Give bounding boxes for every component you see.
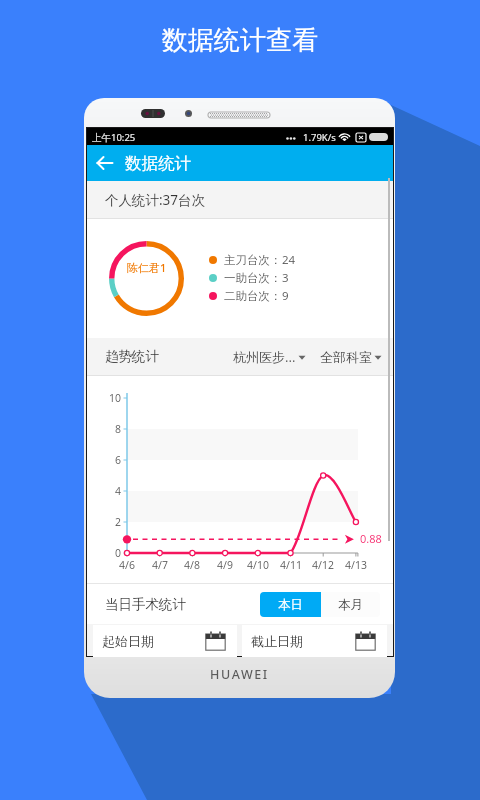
button[interactable]: Back [87, 145, 123, 181]
other: Pick date [355, 631, 376, 651]
staticText: HUAWEI [210, 666, 269, 683]
staticText: 4 [115, 484, 122, 498]
staticText: 本日 [278, 597, 303, 613]
staticText: 4/12 [312, 558, 334, 572]
staticText: 0.88 [360, 531, 382, 546]
button[interactable]: 全部科室 [320, 349, 382, 365]
other: Pick date [205, 631, 226, 651]
staticText: 4/9 [217, 558, 233, 572]
button[interactable]: 起始日期 [93, 625, 237, 657]
button[interactable]: 杭州医步... [233, 348, 306, 366]
staticText: 4/8 [184, 558, 200, 572]
staticText: 4/7 [152, 558, 168, 572]
staticText: 趋势统计 [105, 348, 159, 365]
staticText: 起始日期 [102, 633, 154, 649]
staticText: 一助台次： [224, 271, 282, 285]
staticText: 2 [115, 515, 122, 529]
staticText: 4/6 [119, 558, 135, 572]
staticText: 数据统计查看 [162, 24, 318, 57]
staticText: 个人统计:37台次 [105, 191, 206, 209]
staticText: 24 [282, 252, 296, 268]
staticText: 4/11 [280, 558, 302, 572]
button[interactable]: 本月 [321, 592, 380, 617]
staticText: 当日手术统计 [105, 596, 186, 613]
staticText: 6 [115, 453, 122, 467]
staticText: 主刀台次： [224, 253, 282, 267]
staticText: 杭州医步... [233, 348, 296, 366]
staticText: 0 [115, 546, 122, 560]
staticText: 上午10:25 [92, 131, 136, 144]
button[interactable]: 本日 [260, 592, 321, 617]
staticText: 4/13 [345, 558, 367, 572]
staticText: 10 [109, 391, 122, 405]
staticText: 二助台次： [224, 289, 282, 303]
staticText: 全部科室 [320, 349, 372, 365]
staticText: 截止日期 [251, 633, 303, 649]
staticText: 4/10 [247, 558, 269, 572]
staticText: 数据统计 [125, 153, 191, 174]
staticText: 1.79K/s [303, 131, 336, 144]
button[interactable]: 截止日期 [242, 625, 387, 657]
staticText: 本月 [338, 597, 363, 613]
staticText: 9 [282, 288, 289, 304]
staticText: 3 [282, 270, 289, 286]
staticText: 陈仁君1 [127, 260, 167, 275]
staticText: 8 [115, 422, 122, 436]
